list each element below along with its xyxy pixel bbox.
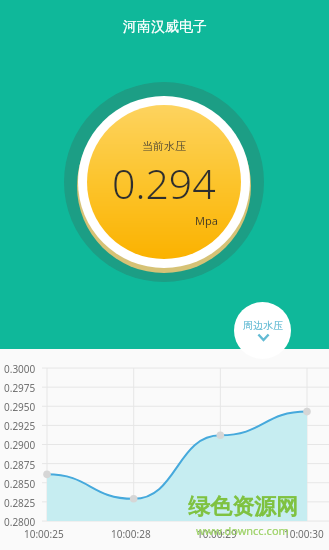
staticText: 当前水压	[142, 139, 186, 153]
staticText: 10:00:25	[24, 527, 64, 541]
button[interactable]: 周边水压	[234, 302, 291, 359]
staticText: 0.2950	[4, 400, 36, 414]
staticText: 0.2875	[4, 458, 36, 472]
staticText: 0.2850	[4, 477, 36, 491]
staticText: 绿色资源网	[188, 493, 298, 521]
staticText: 10:00:29	[197, 527, 237, 541]
staticText: 河南汉威电子	[123, 18, 207, 36]
staticText: 0.2925	[4, 419, 36, 433]
staticText: 周边水压	[243, 319, 283, 332]
staticText: 0.2825	[4, 496, 36, 510]
staticText: 0.2975	[4, 381, 36, 395]
staticText: 10:00:28	[111, 527, 151, 541]
staticText: 0.3000	[4, 362, 36, 376]
staticText: www.downcc.com	[196, 523, 289, 538]
staticText: 0.2800	[4, 515, 36, 529]
staticText: 0.2900	[4, 438, 36, 452]
staticText: 10:00:30	[284, 527, 324, 541]
staticText: Mpa	[195, 213, 218, 228]
staticText: 0.294	[112, 155, 216, 211]
